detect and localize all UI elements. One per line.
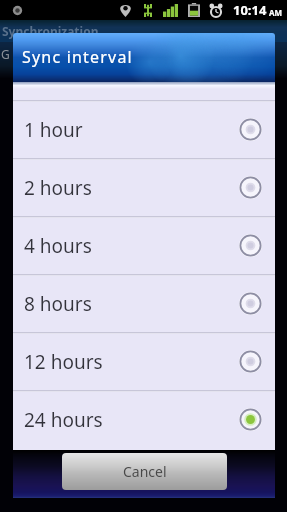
button[interactable]: 8 hours: [13, 276, 275, 332]
button[interactable]: 2 hours: [13, 160, 275, 216]
staticText: Sync interval: [22, 46, 133, 68]
staticText: 10:14: [233, 1, 267, 19]
staticText: 12 hours: [24, 349, 103, 375]
button[interactable]: 1 hour: [13, 102, 275, 158]
button[interactable]: 4 hours: [13, 218, 275, 274]
staticText: 4 hours: [24, 233, 92, 259]
staticText: 1 hour: [24, 117, 83, 143]
staticText: AM: [269, 7, 283, 18]
staticText: 24 hours: [24, 407, 103, 433]
button[interactable]: 24 hours: [13, 392, 275, 448]
staticText: G: [1, 46, 10, 62]
staticText: Synchronization: [2, 23, 99, 39]
button[interactable]: Cancel: [62, 453, 227, 490]
staticText: Cancel: [123, 462, 167, 481]
staticText: 8 hours: [24, 291, 92, 317]
staticText: 2 hours: [24, 175, 92, 201]
button[interactable]: 12 hours: [13, 334, 275, 390]
